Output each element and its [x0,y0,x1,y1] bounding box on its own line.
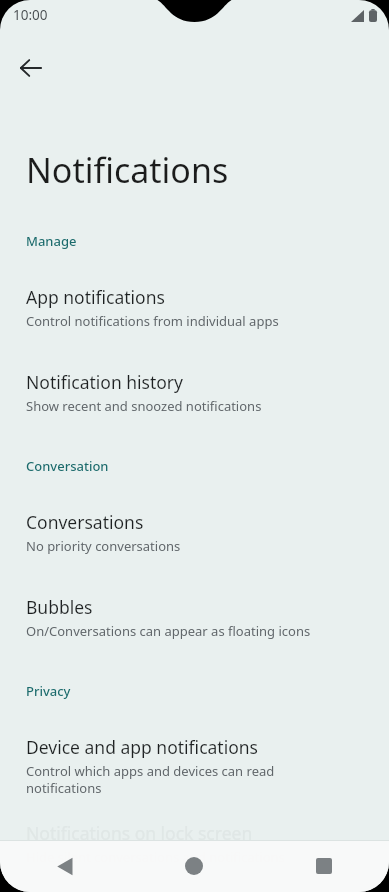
staticText: Notifications [26,147,229,193]
button[interactable]: Back [0,840,129,892]
staticText: Hide silent conversations and notificati… [26,848,285,866]
staticText: Manage [26,232,77,250]
button[interactable]: Recent apps [259,840,389,892]
button[interactable]: Bubbles [0,595,389,640]
staticText: On/Conversations can appear as floating … [26,622,311,640]
button[interactable]: Home [129,840,259,892]
staticText: Notifications on lock screen [26,821,253,845]
staticText: Show recent and snoozed notifications [26,397,262,415]
button[interactable]: Back [9,46,53,90]
staticText: No priority conversations [26,537,181,555]
button[interactable]: Conversations [0,510,389,555]
button[interactable]: Device and app notifications [0,735,389,797]
staticText: Bubbles [26,595,93,619]
staticText: Control notifications from individual ap… [26,312,279,330]
staticText: Conversation [26,457,109,475]
staticText: App notifications [26,285,165,309]
staticText: 10:00 [13,6,48,24]
button[interactable]: App notifications [0,285,389,330]
staticText: Privacy [26,682,71,700]
staticText: Notification history [26,370,184,394]
button[interactable]: Notification history [0,370,389,415]
staticText: Device and app notifications [26,735,258,759]
button[interactable]: Notifications on lock screen [0,821,389,866]
staticText: Conversations [26,510,144,534]
staticText: Control which apps and devices can read … [26,762,349,797]
